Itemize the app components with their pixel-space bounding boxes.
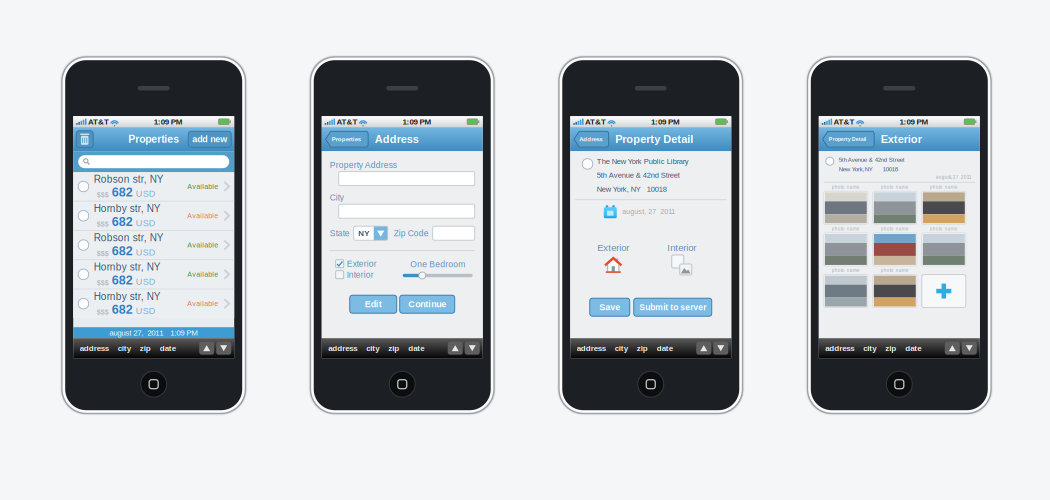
button[interactable]: Sort ascending [945,342,960,355]
staticText: 1:09 PM [651,117,680,126]
button[interactable]: city [113,338,135,358]
staticText: august, 27 2011 [622,208,675,215]
staticText: address [328,344,357,353]
staticText: photo name [832,185,860,190]
button[interactable]: Search [73,155,234,168]
button[interactable]: Hornby str, NY [73,289,234,318]
button[interactable]: Robson str, NY [73,172,234,201]
button[interactable]: zip [632,338,652,358]
staticText: USD [136,277,156,287]
staticText: photo name [881,185,909,190]
staticText: date [905,344,921,353]
staticText: 682 [112,215,133,229]
button[interactable]: Add photo [922,268,966,307]
staticText: 5th Avenue & 42nd Street [839,156,905,163]
staticText: $$$ [97,249,109,257]
staticText: Robson str, NY [94,174,164,185]
button[interactable]: city [362,338,384,358]
staticText: USD [136,218,156,228]
staticText: Zip Code [394,228,429,238]
staticText: date [160,344,176,353]
button[interactable]: Sort ascending [448,342,463,355]
button[interactable]: photo name [922,226,966,266]
staticText: Hornby str, NY [94,291,161,302]
button[interactable]: Property Detail [822,131,875,148]
staticText: date [408,344,424,353]
button[interactable]: photo name [922,185,966,224]
staticText: Address [375,133,419,145]
staticText: 682 [112,244,133,258]
button[interactable]: Hornby str, NY [73,201,234,230]
button[interactable]: zip [384,338,404,358]
staticText: 1:09 PM [899,117,928,126]
button[interactable]: address [821,338,859,358]
button[interactable]: Sort descending [465,342,480,355]
button[interactable]: Sort ascending [696,342,711,355]
staticText: Submit to server [639,302,706,312]
staticText: city [118,344,131,353]
staticText: photo name [832,226,860,231]
staticText: The New York Public Library [597,157,689,166]
staticText: AT&T [585,117,606,126]
staticText: AT&T [88,117,109,126]
button[interactable]: photo name [873,268,917,307]
staticText: date [657,344,673,353]
staticText: AT&T [336,117,357,126]
button[interactable]: photo name [824,268,868,307]
staticText: USD [136,247,156,257]
staticText: zip [885,344,896,353]
button[interactable]: address [572,338,610,358]
button[interactable]: Sort descending [216,342,231,355]
button[interactable]: Sort descending [713,342,728,355]
button[interactable]: photo name [824,226,868,266]
staticText: Exterior [881,133,922,145]
button[interactable]: photo name [824,185,868,224]
button[interactable]: date [901,338,926,358]
button[interactable]: city [610,338,632,358]
button[interactable]: zip [881,338,901,358]
button[interactable]: Submit to server [634,298,712,316]
button[interactable]: Properties [325,131,369,148]
staticText: Address [579,136,602,142]
button[interactable]: date [652,338,677,358]
button[interactable]: Robson str, NY [73,231,234,259]
staticText: photo name [881,268,909,273]
button[interactable]: address [324,338,362,358]
staticText: Continue [408,299,446,309]
button[interactable]: Hornby str, NY [73,260,234,289]
staticText: zip [388,344,399,353]
staticText: Hornby str, NY [94,261,161,273]
button[interactable]: Delete [76,131,93,148]
button[interactable]: Sort ascending [199,342,214,355]
button[interactable]: photo name [873,185,917,224]
staticText: State [330,228,350,238]
staticText: add new [192,134,227,144]
button[interactable]: photo name [873,226,917,266]
button[interactable]: Unchecked [336,271,344,279]
staticText: Property Detail [829,136,866,142]
staticText: Property Address [330,160,397,170]
button[interactable]: Continue [400,295,455,313]
staticText: USD [136,306,156,316]
button[interactable]: zip [135,338,155,358]
staticText: photo name [881,226,909,231]
button[interactable]: Sort descending [962,342,977,355]
staticText: photo name [930,226,958,231]
button[interactable]: city [859,338,881,358]
button[interactable]: date [404,338,429,358]
staticText: $$$ [97,308,109,316]
staticText: Save [599,302,620,312]
staticText: Exterior [347,259,377,268]
staticText: One Bedroom [410,259,465,269]
button[interactable]: Checked [336,260,344,268]
staticText: Available [187,182,218,190]
button[interactable]: Edit [350,295,397,313]
staticText: 682 [112,302,133,316]
button[interactable]: Save [590,298,630,316]
button[interactable]: address [75,338,113,358]
button[interactable]: date [155,338,180,358]
button[interactable]: add new [188,131,231,147]
staticText: zip [140,344,151,353]
button[interactable]: Address [573,131,609,148]
